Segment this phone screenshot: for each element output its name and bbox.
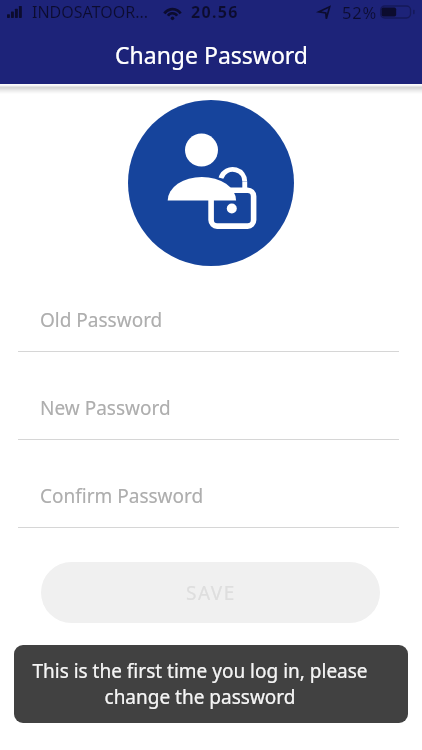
button[interactable]: Confirm Password — [0, 483, 422, 527]
staticText: New Password — [40, 395, 171, 421]
staticText: 20.56 — [191, 1, 239, 23]
staticText: This is the first time you log in, pleas… — [32, 658, 368, 710]
staticText: Confirm Password — [40, 483, 204, 509]
button[interactable]: SAVE — [41, 562, 380, 623]
staticText: SAVE — [186, 580, 236, 606]
staticText: 52% — [342, 1, 377, 23]
staticText: INDOSATOOR... — [32, 1, 149, 23]
button[interactable]: This is the first time you log in, pleas… — [14, 645, 408, 723]
staticText: Old Password — [40, 307, 163, 333]
button[interactable]: New Password — [0, 395, 422, 439]
button[interactable]: Old Password — [0, 307, 422, 351]
staticText: Change Password — [115, 39, 308, 70]
